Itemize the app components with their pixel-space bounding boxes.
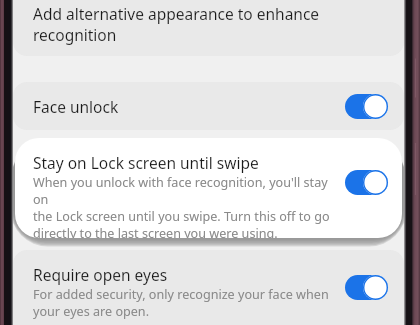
staticText: Face unlock [33,96,345,117]
staticText: For added security, only recognize your … [33,286,329,320]
button[interactable]: Toggle switch, on [345,170,388,195]
button[interactable]: Toggle switch, on [345,275,388,300]
staticText: Require open eyes [33,264,168,285]
staticText: When you unlock with face recognition, y… [33,174,335,238]
staticText: Add alternative appearance to enhance re… [33,3,320,46]
staticText: Stay on Lock screen until swipe [33,152,259,173]
button[interactable]: Stay on Lock screen until swipe [15,138,402,238]
button[interactable]: Add alternative appearance to enhance re… [13,0,404,56]
button[interactable]: Toggle switch, on [345,94,388,119]
button[interactable]: Require open eyes [13,250,404,325]
button[interactable]: Face unlock [13,82,404,130]
